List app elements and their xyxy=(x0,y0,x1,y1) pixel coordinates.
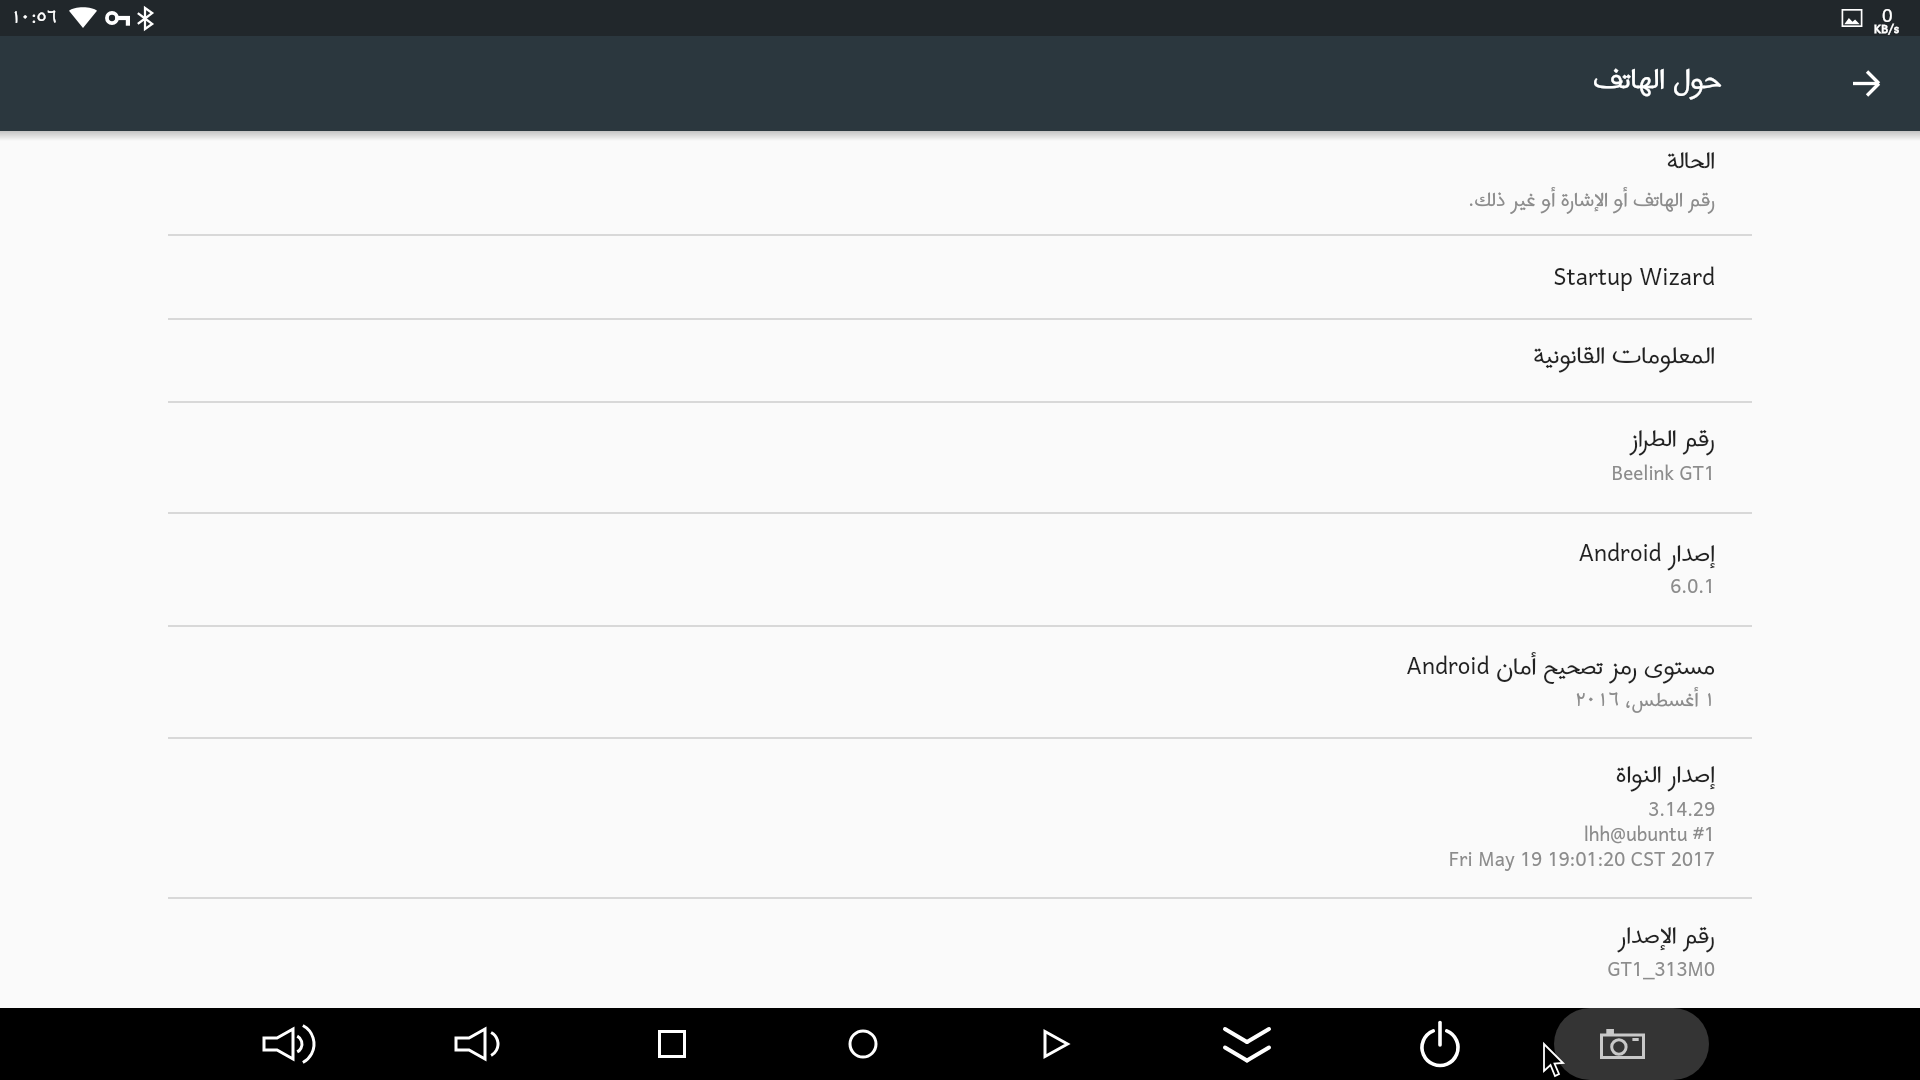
staticText: حول الهاتف xyxy=(1593,50,1723,111)
staticText: الحالة xyxy=(1666,136,1715,187)
staticText: 3.14.29 xyxy=(1648,790,1715,833)
button[interactable]: Screenshot xyxy=(1554,1008,1709,1080)
button[interactable]: Home xyxy=(827,1008,899,1080)
button[interactable]: مستوى رمز تصحيح أمان Android xyxy=(0,627,1920,739)
button[interactable]: رقم الطراز xyxy=(0,403,1920,514)
button[interactable]: الحالة xyxy=(0,131,1920,236)
staticText: 6.0.1 xyxy=(1670,567,1715,610)
staticText: ١ أغسطس، ٢٠١٦ xyxy=(1575,680,1715,723)
staticText: رقم الطراز xyxy=(1629,414,1715,465)
staticText: 0 xyxy=(1882,0,1893,33)
staticText: مستوى رمز تصحيح أمان Android xyxy=(1406,642,1715,693)
staticText: رقم الهاتف أو الإشارة أو غير ذلك. xyxy=(1468,180,1715,223)
staticText: المعلومات القانونية xyxy=(1533,331,1715,382)
button[interactable]: Volume up xyxy=(253,1008,325,1080)
button[interactable]: Power xyxy=(1404,1008,1476,1080)
button[interactable]: Hide navigation xyxy=(1211,1008,1283,1080)
button[interactable]: إصدار Android xyxy=(0,514,1920,627)
staticText: رقم الإصدار xyxy=(1618,911,1715,962)
staticText: Startup Wizard xyxy=(1553,253,1715,304)
staticText: ١٠:٥٦ xyxy=(11,0,57,35)
staticText: Fri May 19 19:01:20 CST 2017 xyxy=(1448,840,1715,883)
button[interactable]: رقم الإصدار xyxy=(0,899,1920,1008)
staticText: Beelink GT1 xyxy=(1611,454,1715,497)
staticText: إصدار Android xyxy=(1578,529,1715,580)
button[interactable]: المعلومات القانونية xyxy=(0,320,1920,403)
staticText: lhh@ubuntu #1 xyxy=(1583,815,1715,858)
button[interactable]: Volume down xyxy=(444,1008,516,1080)
staticText: GT1_313M0 xyxy=(1607,950,1715,993)
staticText: KB/s xyxy=(1874,17,1900,43)
button[interactable]: إصدار النواة xyxy=(0,739,1920,899)
button[interactable]: Recent apps xyxy=(636,1008,708,1080)
button[interactable]: Back xyxy=(1834,51,1898,115)
staticText: إصدار النواة xyxy=(1615,750,1715,801)
button[interactable]: Back xyxy=(1020,1008,1092,1080)
button[interactable]: Startup Wizard xyxy=(0,236,1920,320)
